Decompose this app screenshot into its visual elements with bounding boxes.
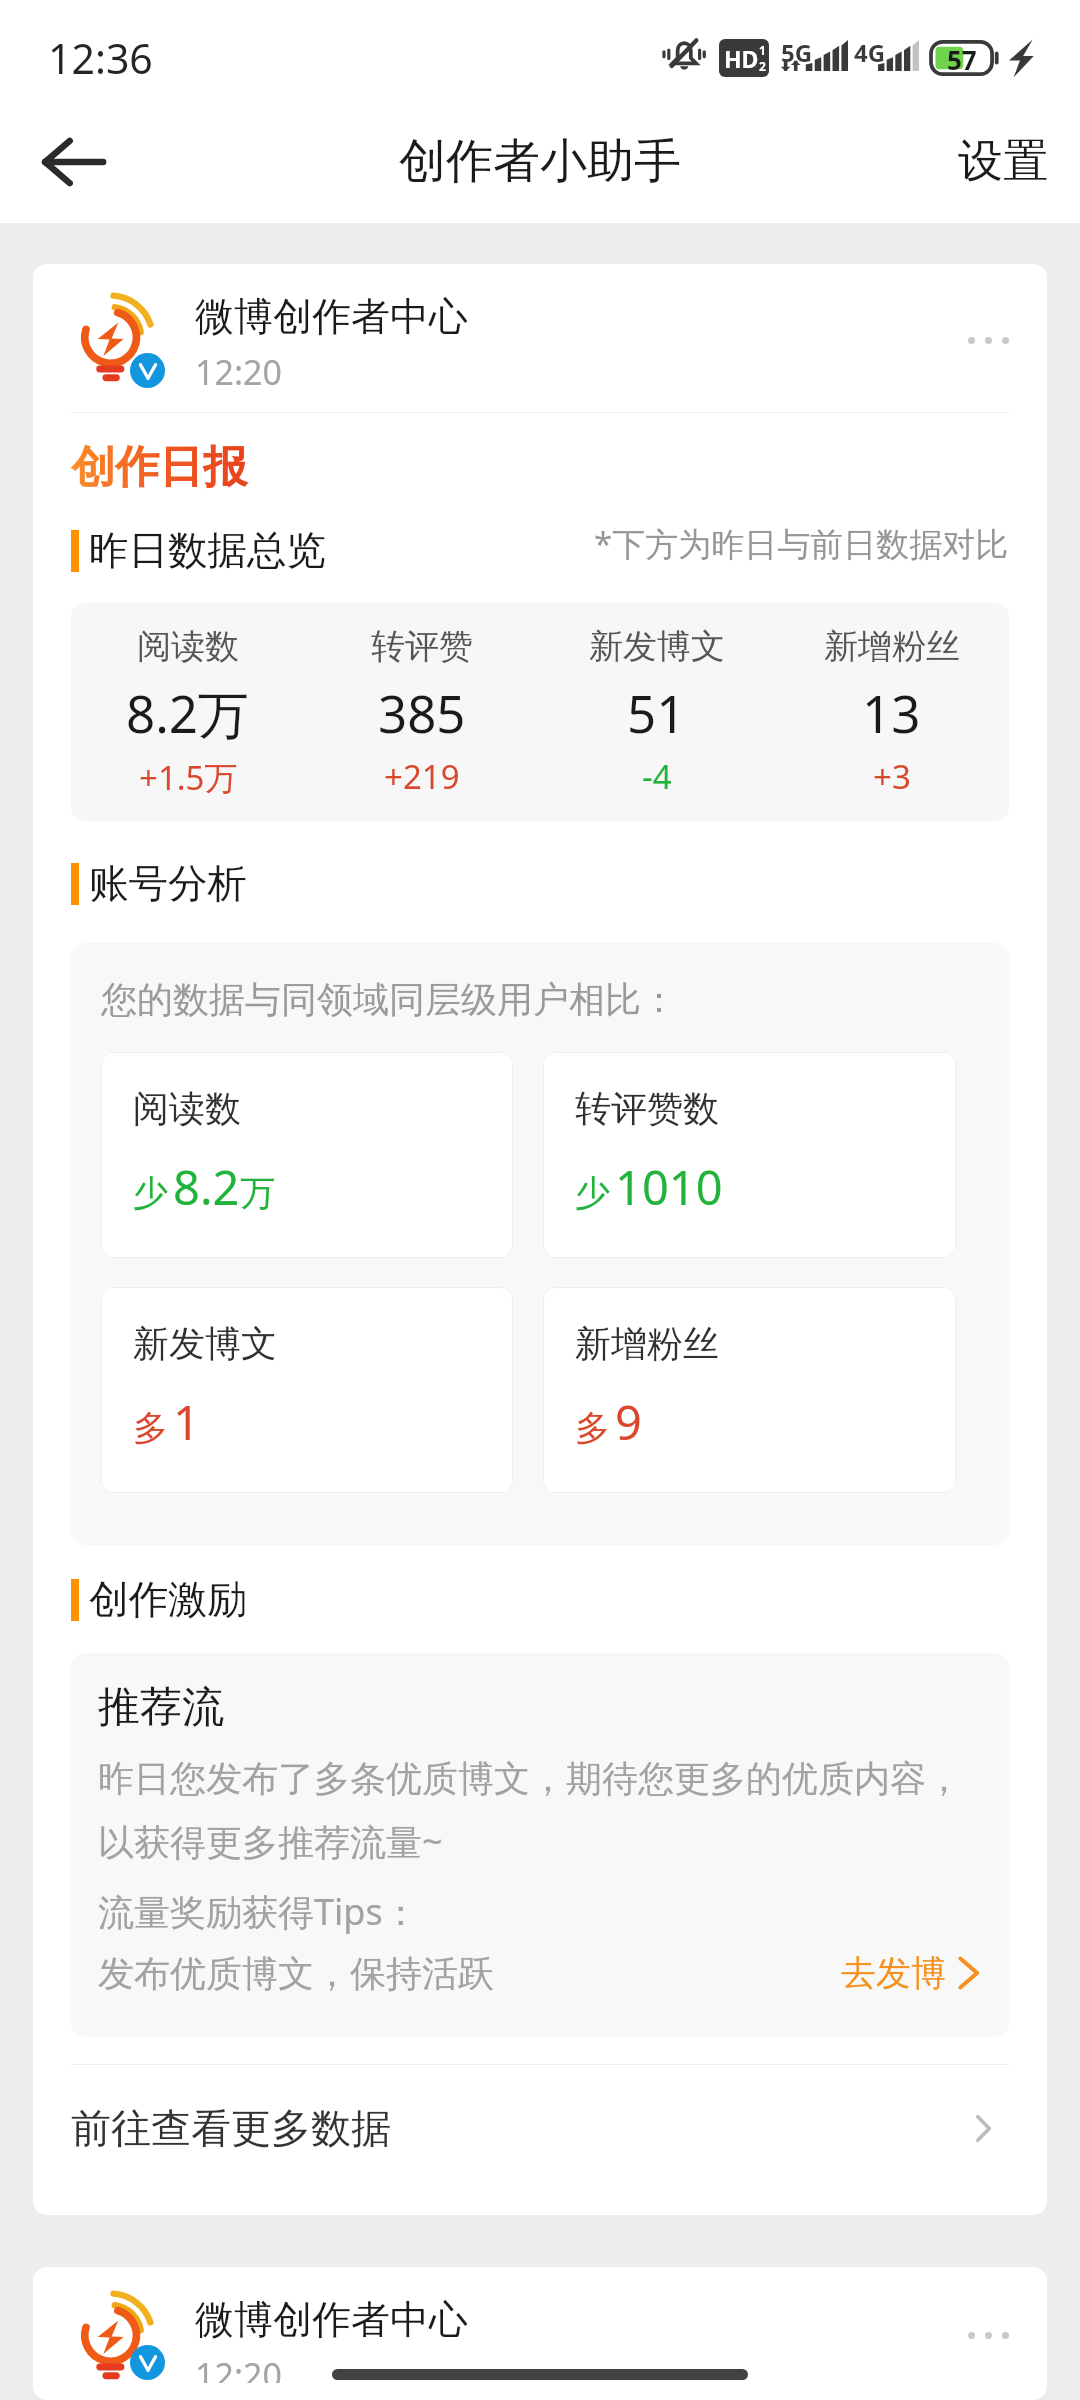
button[interactable]: 新增粉丝 [543, 1287, 956, 1493]
staticText: 新增粉丝 [575, 1321, 719, 1366]
staticText: 12:36 [48, 30, 153, 86]
staticText: 转评赞 [371, 625, 473, 668]
staticText: 创作日报 [71, 440, 247, 495]
staticText: *下方为昨日与前日数据对比 [594, 521, 1009, 566]
staticText: 万 [240, 1171, 275, 1215]
staticText: 前往查看更多数据 [71, 2103, 391, 2153]
staticText: 新发博文 [133, 1321, 277, 1366]
staticText: 8.2万 [126, 678, 250, 748]
button[interactable]: More options [935, 314, 1009, 374]
staticText: 新增粉丝 [824, 625, 960, 668]
button[interactable]: 新发博文 [101, 1287, 513, 1493]
staticText: 发布优质博文，保持活跃 [98, 1951, 494, 1996]
staticText: 8.2 [173, 1155, 240, 1219]
button[interactable]: Back [0, 100, 147, 223]
staticText: 创作激励 [89, 1575, 247, 1625]
staticText: 新发博文 [589, 625, 725, 668]
staticText: 转评赞数 [575, 1086, 719, 1131]
staticText: -4 [642, 754, 672, 799]
staticText: 账号分析 [89, 859, 247, 909]
staticText: 少 [575, 1171, 610, 1215]
staticText: 4G [854, 36, 886, 69]
staticText: +219 [384, 754, 460, 799]
button[interactable]: 前往查看更多数据 [33, 2065, 1047, 2215]
staticText: 51 [627, 678, 686, 747]
staticText: 昨日您发布了多条优质博文，期待您更多的优质内容，以获得更多推荐流量~ [98, 1756, 987, 1865]
staticText: 微博创作者中心 [195, 292, 468, 341]
staticText: 多 [133, 1406, 168, 1450]
staticText: HD [724, 43, 759, 74]
staticText: 9 [615, 1390, 642, 1454]
staticText: 推荐流 [98, 1681, 224, 1734]
button[interactable]: 转评赞数 [543, 1052, 956, 1258]
button[interactable]: More options [935, 2309, 1009, 2369]
staticText: 设置 [958, 133, 1048, 190]
staticText: 昨日数据总览 [89, 526, 326, 576]
button[interactable]: 设置 [926, 100, 1080, 223]
staticText: 1010 [615, 1155, 723, 1219]
staticText: 多 [575, 1406, 610, 1450]
staticText: 去发博 [841, 1951, 946, 1995]
staticText: 微博创作者中心 [195, 2295, 468, 2344]
staticText: 您的数据与同领域同层级用户相比： [101, 977, 677, 1022]
staticText: 2 [759, 58, 766, 74]
staticText: 1 [173, 1390, 200, 1454]
staticText: 12:20 [195, 2352, 282, 2383]
staticText: 创作者小助手 [399, 132, 681, 191]
staticText: 385 [378, 678, 466, 747]
staticText: 流量奖励获得Tips： [98, 1887, 419, 1936]
staticText: 阅读数 [137, 625, 239, 668]
staticText: 1 [759, 42, 766, 58]
button[interactable]: 阅读数 [101, 1052, 513, 1258]
staticText: 阅读数 [133, 1086, 241, 1131]
staticText: 5G [781, 36, 813, 69]
button[interactable]: 去发博 [841, 1943, 987, 2003]
staticText: 57 [947, 42, 977, 77]
staticText: 13 [862, 678, 921, 747]
button[interactable]: 微博创作者中心 [33, 2267, 1047, 2400]
staticText: 12:20 [195, 349, 282, 395]
staticText: 少 [133, 1171, 168, 1215]
staticText: +3 [873, 754, 911, 799]
staticText: +1.5万 [139, 755, 238, 800]
